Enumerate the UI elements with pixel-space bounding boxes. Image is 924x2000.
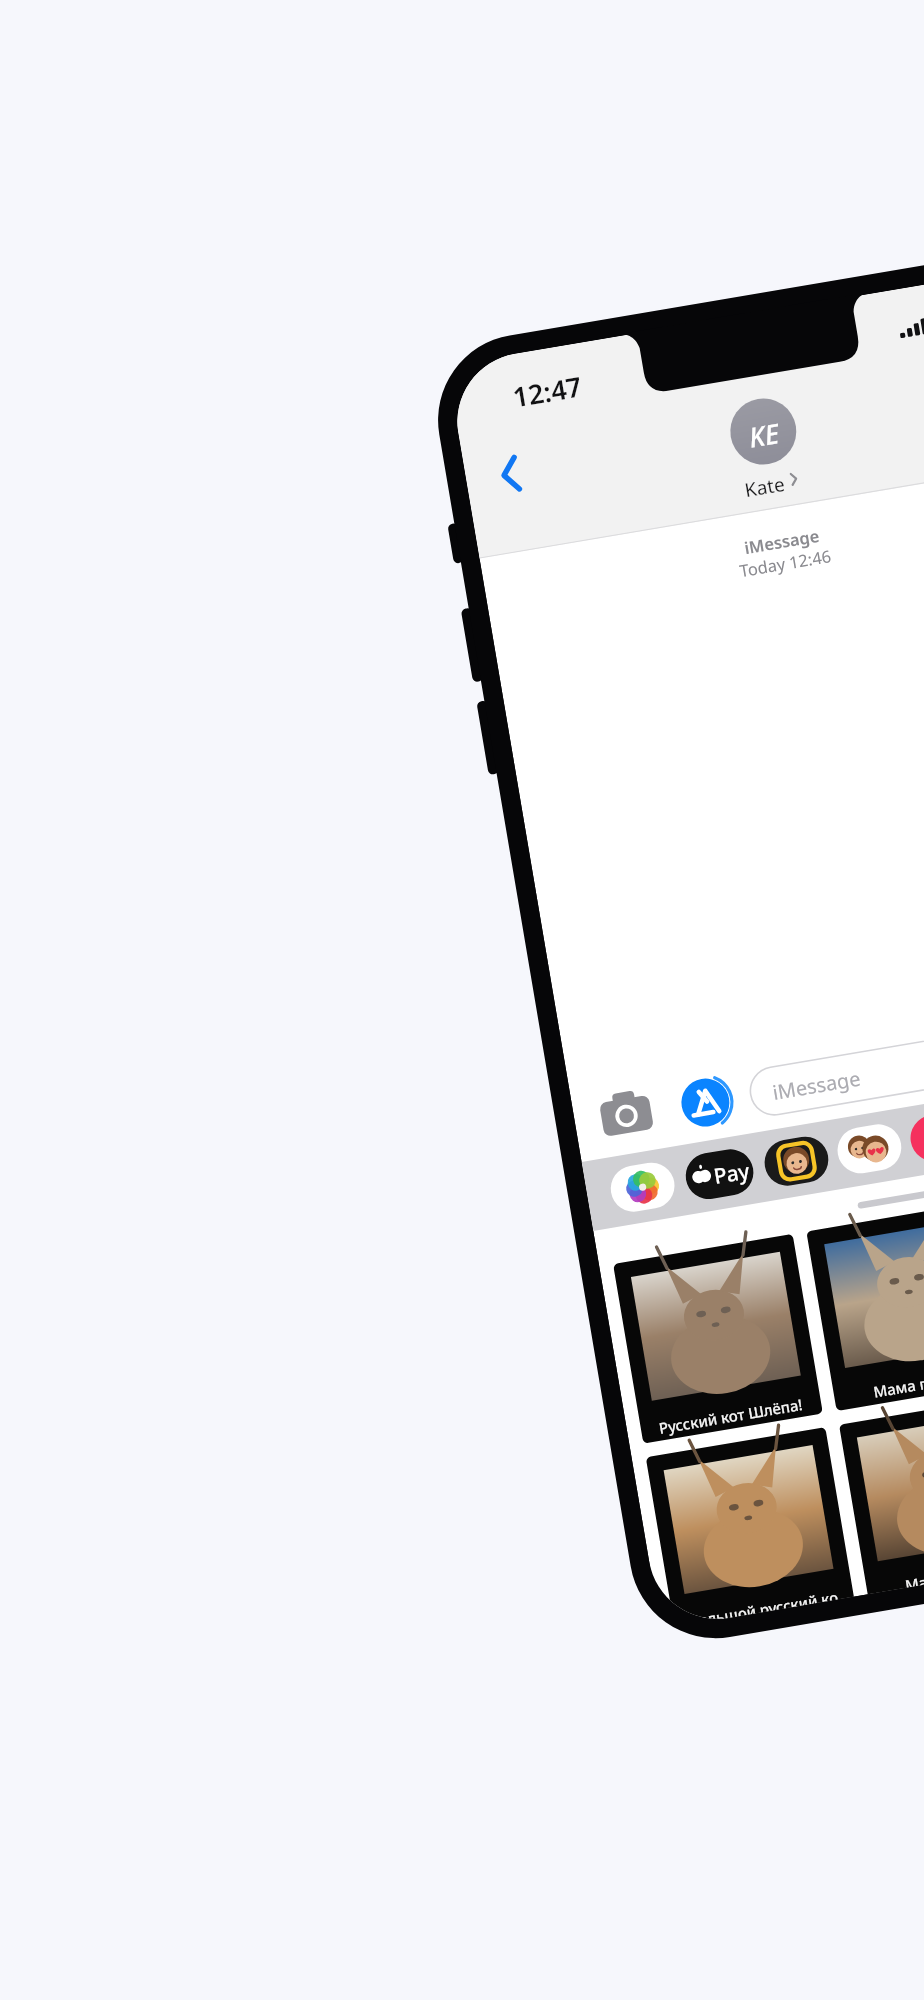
button[interactable]: iMessage sticker drawer on iPhone bbox=[0, 0, 924, 2000]
